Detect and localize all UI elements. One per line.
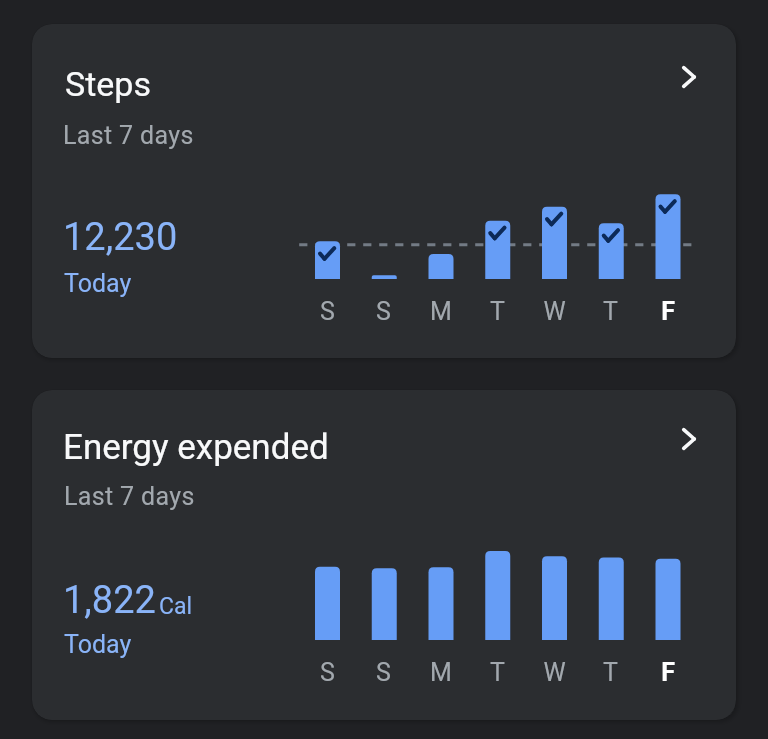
- other: See details: [665, 415, 713, 463]
- staticText: S: [376, 297, 391, 326]
- staticText: T: [490, 297, 505, 326]
- staticText: Energy expended: [63, 427, 329, 468]
- staticText: Last 7 days: [63, 121, 194, 150]
- staticText: T: [490, 658, 505, 687]
- staticText: 12,230: [63, 215, 178, 260]
- staticText: Today: [64, 269, 132, 298]
- staticText: S: [320, 297, 335, 326]
- staticText: M: [430, 658, 452, 687]
- other: See details: [665, 53, 713, 101]
- button[interactable]: Steps: [32, 24, 736, 358]
- staticText: Steps: [65, 64, 151, 104]
- staticText: Today: [64, 630, 132, 659]
- staticText: Cal: [159, 593, 193, 620]
- staticText: F: [661, 658, 675, 687]
- staticText: T: [603, 658, 618, 687]
- staticText: S: [376, 658, 391, 687]
- staticText: Last 7 days: [64, 482, 195, 511]
- staticText: S: [320, 658, 335, 687]
- staticText: T: [603, 297, 618, 326]
- button[interactable]: Energy expended: [32, 390, 736, 720]
- staticText: F: [661, 297, 675, 326]
- staticText: W: [543, 297, 566, 326]
- staticText: 1,822: [63, 578, 156, 623]
- staticText: W: [543, 658, 566, 687]
- staticText: M: [430, 297, 452, 326]
